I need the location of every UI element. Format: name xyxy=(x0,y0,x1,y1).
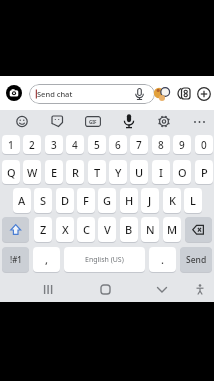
button[interactable]: L xyxy=(184,188,202,213)
button[interactable] xyxy=(64,247,145,272)
staticText: 0 xyxy=(201,138,207,152)
staticText: 4 xyxy=(72,138,78,152)
staticText: B xyxy=(125,222,133,237)
button[interactable]: 5 xyxy=(88,135,106,154)
button[interactable]: U xyxy=(130,160,148,184)
staticText: Send chat xyxy=(37,89,73,99)
button[interactable]: W xyxy=(23,160,41,184)
button[interactable] xyxy=(156,113,172,129)
staticText: D xyxy=(61,193,70,208)
staticText: 3 xyxy=(51,138,57,152)
button[interactable]: Z xyxy=(34,217,52,242)
staticText: I xyxy=(159,165,163,180)
staticText: Y xyxy=(115,165,122,180)
staticText: Send xyxy=(186,254,207,266)
button[interactable]: N xyxy=(141,217,159,242)
staticText: 8 xyxy=(158,138,164,152)
button[interactable] xyxy=(153,85,170,102)
button[interactable]: 7 xyxy=(130,135,148,154)
button[interactable]: G xyxy=(98,188,116,213)
button[interactable]: !#1 xyxy=(2,247,29,272)
staticText: V xyxy=(104,222,111,237)
button[interactable]: GIF xyxy=(85,116,101,127)
button[interactable]: B xyxy=(120,217,138,242)
staticText: N xyxy=(146,222,155,237)
button[interactable]: A xyxy=(13,188,31,213)
button[interactable]: S xyxy=(34,188,52,213)
button[interactable]: , xyxy=(33,247,60,272)
staticText: S xyxy=(40,193,47,208)
button[interactable] xyxy=(192,114,207,129)
button[interactable]: C xyxy=(77,217,95,242)
button[interactable] xyxy=(2,217,29,242)
staticText: . xyxy=(161,252,164,267)
button[interactable] xyxy=(88,277,124,301)
button[interactable]: 9 xyxy=(173,135,191,154)
button[interactable]: 3 xyxy=(45,135,63,154)
button[interactable]: 4 xyxy=(66,135,84,154)
staticText: 9 xyxy=(179,138,185,152)
staticText: F xyxy=(83,193,89,208)
staticText: Z xyxy=(40,222,47,237)
staticText: 2 xyxy=(29,138,35,152)
button[interactable] xyxy=(185,217,212,242)
button[interactable]: J xyxy=(141,188,159,213)
button[interactable]: D xyxy=(56,188,74,213)
staticText: R xyxy=(72,165,79,180)
button[interactable]: . xyxy=(149,247,176,272)
button[interactable]: O xyxy=(173,160,191,184)
staticText: M xyxy=(167,222,178,237)
staticText: C xyxy=(83,222,90,237)
staticText: Q xyxy=(7,165,16,180)
button[interactable]: V xyxy=(98,217,116,242)
button[interactable]: 1 xyxy=(2,135,20,154)
staticText: 5 xyxy=(94,138,100,152)
button[interactable]: 0 xyxy=(195,135,213,154)
staticText: O xyxy=(178,165,187,180)
staticText: E xyxy=(51,165,58,180)
button[interactable]: 2 xyxy=(23,135,41,154)
button[interactable] xyxy=(121,112,137,130)
button[interactable]: 6 xyxy=(109,135,127,154)
staticText: K xyxy=(169,193,176,208)
button[interactable] xyxy=(197,87,211,101)
button[interactable]: I xyxy=(152,160,170,184)
button[interactable]: X xyxy=(56,217,74,242)
staticText: P xyxy=(201,165,208,180)
button[interactable] xyxy=(14,113,30,129)
staticText: L xyxy=(190,193,196,208)
staticText: J xyxy=(148,193,152,208)
button[interactable]: T xyxy=(88,160,106,184)
staticText: T xyxy=(94,165,101,180)
staticText: , xyxy=(45,252,49,267)
button[interactable]: H xyxy=(120,188,138,213)
button[interactable]: 8 xyxy=(152,135,170,154)
staticText: A xyxy=(18,193,26,208)
staticText: 6 xyxy=(115,138,121,152)
button[interactable]: F xyxy=(77,188,95,213)
button[interactable]: Q xyxy=(2,160,20,184)
button[interactable] xyxy=(30,277,66,301)
staticText: English (US) xyxy=(85,255,124,265)
button[interactable] xyxy=(6,85,22,101)
staticText: G xyxy=(103,193,111,208)
staticText: U xyxy=(135,165,144,180)
staticText: X xyxy=(62,222,69,237)
button[interactable]: Send xyxy=(180,247,212,272)
staticText: GIF xyxy=(89,119,97,125)
button[interactable]: K xyxy=(163,188,181,213)
button[interactable]: M xyxy=(163,217,181,242)
staticText: 1 xyxy=(8,138,14,152)
staticText: !#1 xyxy=(10,254,22,265)
staticText: 7 xyxy=(136,138,142,152)
button[interactable]: P xyxy=(195,160,213,184)
button[interactable] xyxy=(177,86,192,101)
button[interactable] xyxy=(144,277,180,301)
button[interactable]: E xyxy=(45,160,63,184)
staticText: H xyxy=(125,193,134,208)
button[interactable]: R xyxy=(66,160,84,184)
button[interactable] xyxy=(49,113,66,130)
button[interactable]: Y xyxy=(109,160,127,184)
button[interactable]: Send chat xyxy=(29,84,155,104)
staticText: W xyxy=(27,165,38,180)
